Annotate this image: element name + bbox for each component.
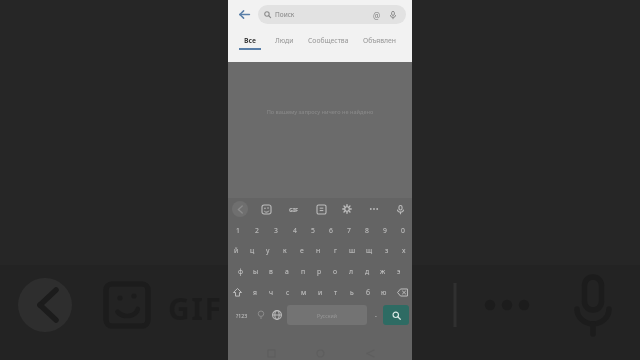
button[interactable]: More options <box>366 201 382 217</box>
button[interactable]: и <box>312 282 328 303</box>
button[interactable]: р <box>311 261 327 282</box>
button[interactable]: Voice search <box>386 8 400 22</box>
button[interactable]: 3 <box>266 220 285 240</box>
staticText: л <box>349 267 353 276</box>
staticText: ж <box>380 267 386 276</box>
button[interactable]: 4 <box>285 220 304 240</box>
button[interactable]: Объявлен <box>363 36 396 50</box>
staticText: 3 <box>274 226 278 235</box>
staticText: р <box>317 267 322 276</box>
staticText: По вашему запросу ничего не найдено <box>228 108 412 116</box>
button[interactable]: а <box>279 261 295 282</box>
button[interactable]: 9 <box>376 220 394 240</box>
staticText: ш <box>349 246 356 255</box>
button[interactable]: э <box>391 261 407 282</box>
button[interactable]: 8 <box>358 220 376 240</box>
staticText: 1 <box>236 226 240 235</box>
staticText: э <box>397 267 401 276</box>
button[interactable]: Stickers <box>258 201 274 217</box>
button[interactable]: Backspace <box>392 282 412 303</box>
button[interactable]: г <box>327 240 344 261</box>
button[interactable]: п <box>295 261 311 282</box>
button[interactable]: ь <box>344 282 360 303</box>
staticText: ы <box>253 267 259 276</box>
staticText: . <box>375 310 377 320</box>
button[interactable]: Clipboard <box>313 201 329 217</box>
button[interactable]: Change language <box>269 305 285 325</box>
staticText: ц <box>250 246 255 255</box>
button[interactable]: Сообщества <box>308 36 349 50</box>
button[interactable]: Поиск <box>258 5 406 24</box>
button[interactable]: ц <box>244 240 260 261</box>
button[interactable]: т <box>328 282 344 303</box>
staticText: 2 <box>255 226 259 235</box>
button[interactable]: ю <box>376 282 392 303</box>
button[interactable]: GIF <box>285 200 303 218</box>
button[interactable]: й <box>228 240 244 261</box>
staticText: 6 <box>329 226 333 235</box>
button[interactable]: Back <box>232 201 248 217</box>
button[interactable]: Все <box>239 36 261 50</box>
staticText: п <box>301 267 306 276</box>
staticText: к <box>283 246 287 255</box>
staticText: у <box>266 246 270 255</box>
button[interactable]: 2 <box>247 220 266 240</box>
staticText: й <box>234 246 239 255</box>
button[interactable]: ч <box>263 282 280 303</box>
button[interactable]: в <box>263 261 279 282</box>
button[interactable]: б <box>360 282 376 303</box>
button[interactable]: Русский <box>287 305 367 325</box>
button[interactable]: 1 <box>228 220 247 240</box>
button[interactable]: Shift <box>228 282 246 303</box>
button[interactable]: Mentions <box>370 8 384 22</box>
staticText: @ <box>373 10 381 21</box>
staticText: я <box>253 288 257 297</box>
button[interactable]: 7 <box>340 220 358 240</box>
staticText: е <box>300 246 304 255</box>
staticText: г <box>334 246 337 255</box>
button[interactable]: у <box>260 240 276 261</box>
staticText: ф <box>238 267 244 276</box>
staticText: 4 <box>293 226 297 235</box>
button[interactable]: ж <box>375 261 391 282</box>
button[interactable]: л <box>343 261 359 282</box>
button[interactable]: 6 <box>322 220 340 240</box>
button[interactable]: я <box>246 282 263 303</box>
staticText: Поиск <box>275 10 295 19</box>
staticText: 9 <box>383 226 387 235</box>
button[interactable]: Voice input <box>392 201 408 217</box>
button[interactable]: Emoji <box>253 305 269 325</box>
button[interactable]: о <box>327 261 343 282</box>
button[interactable]: Люди <box>275 36 294 50</box>
staticText: а <box>285 267 289 276</box>
staticText: 8 <box>365 226 369 235</box>
button[interactable]: м <box>296 282 312 303</box>
button[interactable]: х <box>395 240 412 261</box>
button[interactable]: д <box>359 261 375 282</box>
staticText: Русский <box>317 312 337 319</box>
button[interactable]: Search <box>383 305 409 325</box>
button[interactable]: с <box>280 282 296 303</box>
button[interactable]: ?123 <box>231 305 253 325</box>
button[interactable]: ш <box>344 240 361 261</box>
button[interactable]: 0 <box>394 220 412 240</box>
staticText: ь <box>350 288 354 297</box>
staticText: Люди <box>275 36 294 45</box>
button[interactable]: к <box>276 240 293 261</box>
button[interactable]: ы <box>248 261 263 282</box>
button[interactable]: Back <box>234 4 254 24</box>
button[interactable]: . <box>369 305 383 325</box>
button[interactable]: щ <box>361 240 378 261</box>
button[interactable]: ф <box>233 261 248 282</box>
button[interactable]: е <box>293 240 310 261</box>
button[interactable]: н <box>310 240 327 261</box>
staticText: и <box>318 288 323 297</box>
staticText: ?123 <box>236 312 248 319</box>
button[interactable]: Settings <box>339 201 355 217</box>
staticText: 5 <box>311 226 315 235</box>
button[interactable]: 5 <box>304 220 322 240</box>
button[interactable]: з <box>378 240 395 261</box>
